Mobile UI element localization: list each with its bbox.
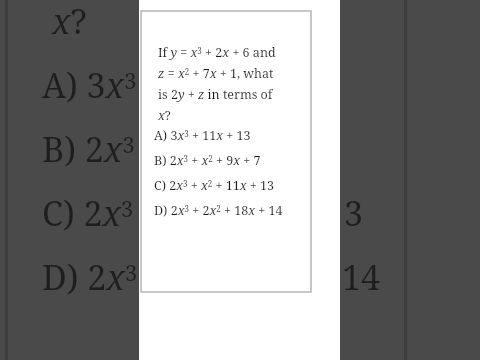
staticText: If y = x3 + 2x + 6 and bbox=[158, 44, 276, 61]
staticText: is 2y + z in terms of bbox=[158, 86, 273, 103]
staticText: D) 2x3 bbox=[42, 254, 138, 300]
button[interactable]: D) 2x3 + 2x2 + 18x + 14 bbox=[154, 199, 306, 221]
staticText: C) 2x3 + x2 + 11x + 13 bbox=[154, 177, 275, 194]
staticText: B) 2x3 + x2 + 9x + 7 bbox=[154, 152, 261, 169]
button[interactable] bbox=[139, 0, 340, 360]
button[interactable]: B) 2x3 + x2 + 9x + 7 bbox=[154, 149, 306, 171]
staticText: x? bbox=[52, 0, 87, 44]
staticText: z = x2 + 7x + 1, what bbox=[158, 65, 274, 82]
button[interactable]: A) 3x3 + 11x + 13 bbox=[154, 124, 306, 146]
staticText: D) 2x3 + 2x2 + 18x + 14 bbox=[154, 202, 283, 219]
button[interactable]: If y = x3 + 2x + 6 and bbox=[141, 11, 311, 292]
staticText: A) 3x3 bbox=[42, 62, 137, 108]
staticText: B) 2x3 bbox=[42, 126, 135, 172]
staticText: x? bbox=[158, 107, 171, 124]
staticText: 14 bbox=[342, 254, 381, 300]
button[interactable]: C) 2x3 + x2 + 11x + 13 bbox=[154, 174, 306, 196]
staticText: 3 bbox=[344, 190, 364, 236]
staticText: C) 2x3 bbox=[42, 190, 134, 236]
staticText: A) 3x3 + 11x + 13 bbox=[154, 127, 251, 144]
